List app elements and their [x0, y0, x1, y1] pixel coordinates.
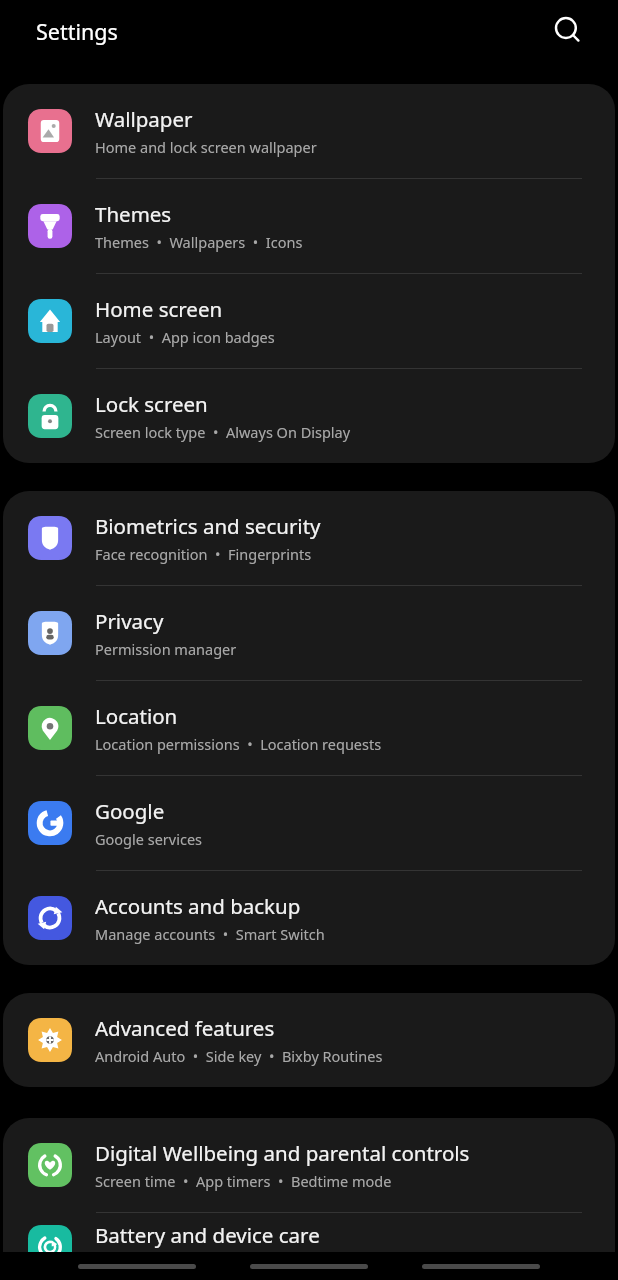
staticText: Google services: [95, 829, 203, 849]
staticText: Home screen: [95, 295, 223, 323]
button[interactable]: Back: [422, 1264, 540, 1269]
staticText: Battery and device care: [95, 1221, 320, 1249]
staticText: Storage • Memory • Device protection: [95, 1253, 365, 1273]
staticText: Screen lock type • Always On Display: [95, 422, 351, 442]
staticText: Wallpaper: [95, 105, 193, 133]
staticText: Digital Wellbeing and parental controls: [95, 1139, 470, 1167]
button[interactable]: Wallpaper: [3, 84, 615, 178]
button[interactable]: Themes: [3, 179, 615, 273]
staticText: Accounts and backup: [95, 892, 301, 920]
staticText: Biometrics and security: [95, 512, 321, 540]
staticText: Lock screen: [95, 390, 208, 418]
button[interactable]: Privacy: [3, 586, 615, 680]
staticText: Permission manager: [95, 639, 237, 659]
staticText: Privacy: [95, 607, 164, 635]
staticText: Home and lock screen wallpaper: [95, 137, 317, 157]
staticText: Location permissions • Location requests: [95, 734, 382, 754]
staticText: Layout • App icon badges: [95, 327, 275, 347]
staticText: Themes • Wallpapers • Icons: [95, 232, 303, 252]
staticText: Google: [95, 797, 165, 825]
button[interactable]: Home screen: [3, 274, 615, 368]
button[interactable]: Biometrics and security: [3, 491, 615, 585]
staticText: Android Auto • Side key • Bixby Routines: [95, 1046, 383, 1066]
button[interactable]: Home: [250, 1264, 368, 1269]
staticText: Settings: [36, 17, 118, 46]
staticText: Advanced features: [95, 1014, 275, 1042]
button[interactable]: Accounts and backup: [3, 871, 615, 965]
staticText: Location: [95, 702, 178, 730]
staticText: Face recognition • Fingerprints: [95, 544, 312, 564]
button[interactable]: Digital Wellbeing and parental controls: [3, 1118, 615, 1212]
staticText: Screen time • App timers • Bedtime mode: [95, 1171, 392, 1191]
button[interactable]: Settings: [36, 17, 118, 46]
button[interactable]: Battery and device care: [3, 1213, 615, 1280]
staticText: Themes: [95, 200, 172, 228]
button[interactable]: Lock screen: [3, 369, 615, 463]
button[interactable]: Recents: [78, 1264, 196, 1269]
button[interactable]: Location: [3, 681, 615, 775]
button[interactable]: Search: [546, 9, 590, 53]
button[interactable]: Google: [3, 776, 615, 870]
button[interactable]: Advanced features: [3, 993, 615, 1087]
staticText: Manage accounts • Smart Switch: [95, 924, 325, 944]
